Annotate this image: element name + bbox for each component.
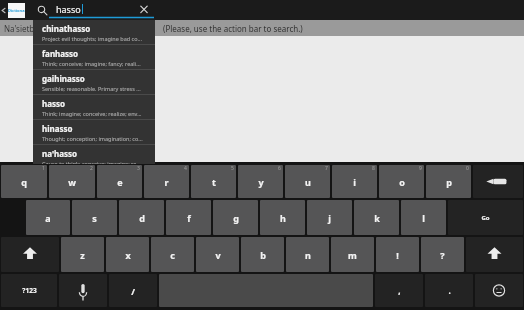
staticText: c	[170, 249, 175, 261]
staticText: x	[125, 249, 131, 261]
button[interactable]: Delete	[473, 165, 523, 198]
staticText: Think; imagine; conceive; realize; env..…	[42, 110, 142, 117]
button[interactable]: v	[196, 237, 239, 272]
button[interactable]: w	[49, 165, 95, 198]
staticText: !	[396, 249, 399, 261]
staticText: 2	[90, 165, 93, 172]
button[interactable]: x	[106, 237, 149, 272]
staticText: 9	[419, 165, 422, 172]
button[interactable]: l	[401, 200, 446, 235]
staticText: 5	[231, 165, 234, 172]
button[interactable]: hasso	[33, 95, 155, 119]
staticText: w	[68, 176, 76, 188]
button[interactable]: b	[241, 237, 284, 272]
button[interactable]: gaihinasso	[33, 70, 155, 94]
staticText: k	[374, 212, 380, 224]
button[interactable]: j	[307, 200, 352, 235]
staticText: 3	[137, 165, 140, 172]
staticText: ,	[398, 285, 401, 296]
button[interactable]: q	[1, 165, 47, 198]
staticText: 1	[42, 165, 45, 172]
staticText: hasso	[42, 98, 66, 109]
button[interactable]: chinathasso	[33, 20, 155, 44]
button[interactable]: .	[425, 274, 473, 307]
button[interactable]: hinasso	[33, 120, 155, 144]
button[interactable]: y	[238, 165, 283, 198]
button[interactable]: Shift	[1, 237, 59, 272]
staticText: z	[80, 249, 85, 261]
staticText: 6	[278, 165, 281, 172]
staticText: p	[446, 176, 452, 188]
button[interactable]: Shift	[466, 237, 523, 272]
staticText: ?123	[22, 286, 37, 295]
staticText: chinathasso	[42, 23, 91, 34]
button[interactable]: r	[144, 165, 189, 198]
staticText: n	[305, 249, 311, 261]
staticText: Go	[481, 214, 490, 222]
button[interactable]: e	[97, 165, 142, 198]
button[interactable]: Go	[448, 200, 523, 235]
staticText: 0	[466, 165, 469, 172]
staticText: b	[260, 249, 266, 261]
staticText: na'hasso	[42, 148, 78, 159]
staticText: fanhasso	[42, 48, 79, 59]
button[interactable]: fanhasso	[33, 45, 155, 69]
button[interactable]: o	[379, 165, 424, 198]
button[interactable]: hasso	[34, 0, 156, 20]
staticText: o	[399, 176, 405, 188]
staticText: 7	[325, 165, 328, 172]
button[interactable]: t	[191, 165, 236, 198]
button[interactable]: u	[285, 165, 330, 198]
staticText: m	[348, 249, 357, 261]
staticText: q	[21, 176, 27, 188]
staticText: y	[258, 176, 264, 188]
staticText: f	[187, 212, 191, 224]
button[interactable]: Emoji	[475, 274, 523, 307]
button[interactable]: a	[26, 200, 70, 235]
staticText: (Please, use the action bar to search.)	[163, 23, 303, 34]
button[interactable]: n	[286, 237, 329, 272]
staticText: g	[233, 212, 239, 224]
button[interactable]: /	[109, 274, 157, 307]
button[interactable]: Voice input	[59, 274, 107, 307]
staticText: Thought; conception; imagination; co...	[42, 135, 143, 142]
staticText: 4	[184, 165, 187, 172]
staticText: a	[45, 212, 51, 224]
staticText: t	[212, 176, 216, 188]
staticText: hinasso	[42, 123, 73, 134]
button[interactable]: ?	[421, 237, 464, 272]
button[interactable]: ?123	[1, 274, 57, 307]
staticText: d	[139, 212, 145, 224]
button[interactable]: p	[426, 165, 471, 198]
button[interactable]: !	[376, 237, 419, 272]
button[interactable]: i	[332, 165, 377, 198]
staticText: l	[422, 212, 425, 224]
button[interactable]: f	[166, 200, 211, 235]
staticText: hasso	[56, 3, 81, 15]
button[interactable]: Navigate up	[0, 0, 30, 20]
staticText: /	[131, 285, 135, 297]
staticText: j	[328, 212, 331, 224]
button[interactable]: h	[260, 200, 305, 235]
button[interactable]: ,	[375, 274, 423, 307]
staticText: i	[353, 176, 356, 188]
staticText: Dictionary	[8, 8, 25, 13]
button[interactable]: d	[119, 200, 164, 235]
staticText: gaihinasso	[42, 73, 85, 84]
button[interactable]: g	[213, 200, 258, 235]
staticText: h	[280, 212, 286, 224]
button[interactable]: k	[354, 200, 399, 235]
staticText: .	[448, 285, 451, 296]
button[interactable]: m	[331, 237, 374, 272]
button[interactable]: na'hasso	[33, 145, 155, 164]
button[interactable]: s	[72, 200, 117, 235]
staticText: r	[164, 176, 169, 188]
button[interactable]: c	[151, 237, 194, 272]
staticText: v	[215, 249, 221, 261]
button[interactable]: z	[61, 237, 104, 272]
staticText: 8	[372, 165, 375, 172]
staticText: s	[92, 212, 97, 224]
staticText: u	[305, 176, 311, 188]
staticText: Sensible; reasonable. Primary stress ...	[42, 85, 141, 92]
